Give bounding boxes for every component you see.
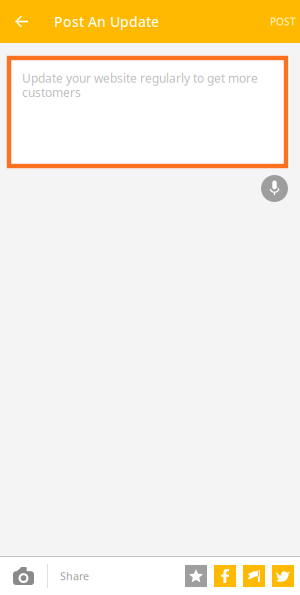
button[interactable]: Share — [48, 557, 89, 595]
button[interactable]: Camera — [0, 557, 47, 595]
staticText: Update your website regularly to get mor… — [22, 71, 258, 99]
staticText: Post An Update — [54, 12, 159, 31]
staticText: Share — [60, 569, 89, 583]
button[interactable]: Facebook — [214, 565, 236, 587]
button[interactable]: Twitter — [272, 565, 294, 587]
button[interactable]: Share link — [243, 565, 265, 587]
button[interactable]: Voice input — [261, 175, 288, 202]
button[interactable]: Favourite — [185, 565, 207, 587]
button[interactable]: Back — [0, 0, 54, 43]
button[interactable]: POST — [270, 0, 300, 43]
staticText: POST — [270, 15, 296, 28]
